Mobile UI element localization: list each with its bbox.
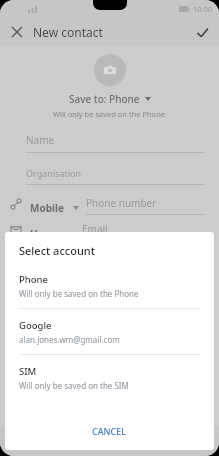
staticText: Save to: Phone [69, 92, 140, 106]
staticText: Will only be saved on the SIM [19, 380, 129, 391]
button[interactable]: Mobile [6, 195, 205, 215]
button[interactable]: Home [98, 429, 122, 453]
staticText: Organisation [26, 167, 82, 179]
staticText: CANCEL [92, 425, 127, 437]
button[interactable]: Name [26, 133, 205, 153]
button[interactable]: Home [6, 221, 205, 241]
button[interactable]: SIM [5, 364, 214, 400]
button[interactable]: Phone [5, 272, 214, 308]
staticText: Select account [19, 243, 95, 258]
staticText: Phone number [86, 196, 157, 210]
button[interactable]: Google [5, 318, 214, 354]
staticText: Email [82, 222, 108, 236]
staticText: alan.jones.wm@gmail.com [19, 334, 120, 345]
button[interactable]: Close [6, 21, 28, 43]
button[interactable]: Add photo [94, 54, 126, 86]
button[interactable]: Back [44, 429, 68, 453]
staticText: Google [19, 319, 52, 332]
button[interactable]: Save to: Phone [69, 92, 151, 106]
staticText: SIM [19, 365, 37, 378]
button[interactable]: CANCEL [5, 418, 214, 444]
staticText: 10:00 [193, 4, 213, 14]
staticText: Home [30, 227, 60, 241]
staticText: Mobile [30, 201, 64, 215]
staticText: Phone [19, 273, 48, 286]
staticText: New contact [33, 24, 103, 40]
staticText: Will only be saved on the Phone [19, 288, 139, 299]
button[interactable]: Organisation [26, 167, 205, 185]
staticText: Will only be saved on the Phone [53, 109, 166, 119]
button[interactable]: Recents [151, 429, 175, 453]
button[interactable]: Save [191, 21, 213, 43]
staticText: Name [26, 133, 55, 147]
